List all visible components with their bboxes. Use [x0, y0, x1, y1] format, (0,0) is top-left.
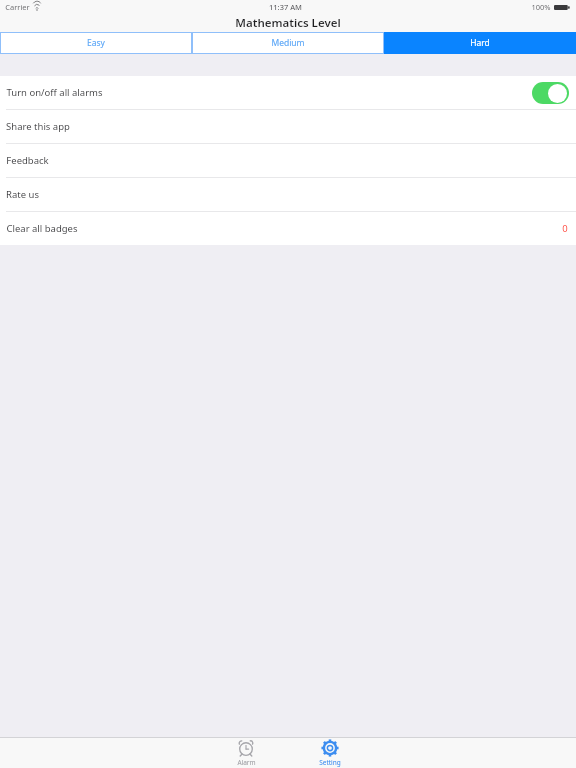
staticText: Hard: [470, 37, 490, 49]
button[interactable]: Alarm: [220, 738, 272, 768]
staticText: Feedback: [6, 154, 49, 167]
staticText: 11:37 AM: [269, 2, 302, 12]
staticText: Mathematics Level: [235, 15, 341, 31]
button[interactable]: Toggle all alarms: [532, 82, 569, 104]
button[interactable]: Setting: [304, 738, 356, 768]
staticText: 100%: [531, 2, 551, 12]
staticText: Setting: [319, 758, 341, 767]
button[interactable]: Clear all badges: [0, 212, 576, 245]
button[interactable]: Feedback: [0, 144, 576, 177]
staticText: Rate us: [6, 188, 39, 201]
button[interactable]: Rate us: [0, 178, 576, 211]
staticText: Medium: [271, 37, 305, 49]
button[interactable]: Hard: [384, 32, 576, 54]
button[interactable]: Easy: [0, 32, 192, 54]
staticText: Easy: [87, 37, 105, 49]
button[interactable]: Medium: [192, 32, 384, 54]
staticText: Clear all badges: [6, 222, 78, 235]
staticText: Alarm: [237, 758, 256, 767]
staticText: 0: [562, 222, 568, 235]
staticText: Carrier: [5, 2, 30, 12]
button[interactable]: Turn on/off all alarms: [0, 76, 576, 109]
staticText: Turn on/off all alarms: [6, 86, 103, 99]
button[interactable]: Share this app: [0, 110, 576, 143]
staticText: Share this app: [6, 120, 70, 133]
